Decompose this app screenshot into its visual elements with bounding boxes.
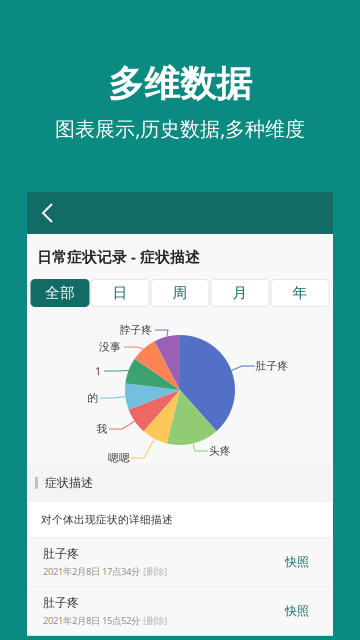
staticText: 肚子疼 xyxy=(43,595,79,610)
staticText: [删除] xyxy=(143,565,167,577)
staticText: 1 xyxy=(95,364,101,378)
staticText: 全部 xyxy=(45,284,75,302)
staticText: 周 xyxy=(172,284,187,302)
staticText: 肚子疼 xyxy=(43,546,79,561)
staticText: 图表展示,历史数据,多种维度 xyxy=(55,115,305,142)
staticText: 的 xyxy=(87,391,98,404)
staticText: 嗯嗯 xyxy=(108,451,130,464)
button[interactable]: Back xyxy=(27,192,69,234)
staticText: 2021年2月8日 17点34分 xyxy=(43,565,140,577)
button[interactable]: 肚子疼 xyxy=(27,537,333,586)
button[interactable]: 月 xyxy=(211,279,269,306)
button[interactable]: 周 xyxy=(151,279,209,306)
staticText: 日常症状记录 - 症状描述 xyxy=(37,247,200,266)
staticText: 没事 xyxy=(99,340,121,353)
staticText: 症状描述 xyxy=(45,475,93,490)
button[interactable]: 肚子疼 xyxy=(27,586,333,636)
staticText: 快照 xyxy=(285,554,309,569)
staticText: 对个体出现症状的详细描述 xyxy=(41,513,173,526)
staticText: 多维数据 xyxy=(108,62,252,106)
button[interactable]: 日 xyxy=(91,279,149,306)
staticText: 日 xyxy=(112,284,127,302)
staticText: 头疼 xyxy=(209,444,231,457)
button[interactable]: 年 xyxy=(271,279,329,306)
staticText: 脖子疼 xyxy=(119,323,152,336)
staticText: 肚子疼 xyxy=(255,359,288,372)
staticText: 年 xyxy=(292,284,307,302)
staticText: 2021年2月8日 15点52分 xyxy=(43,614,140,627)
staticText: 我 xyxy=(96,422,107,435)
staticText: [删除] xyxy=(143,614,167,627)
staticText: 月 xyxy=(232,284,247,302)
staticText: 快照 xyxy=(285,604,309,618)
button[interactable]: 全部 xyxy=(31,279,89,306)
